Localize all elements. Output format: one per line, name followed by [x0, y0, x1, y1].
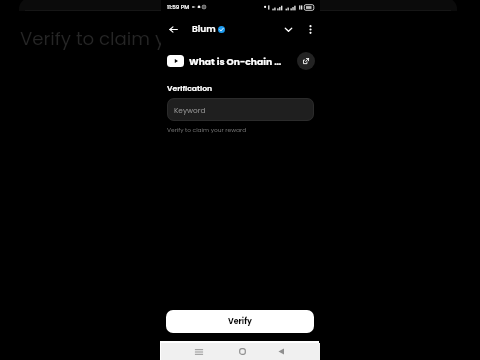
button[interactable]: Home: [233, 343, 251, 360]
staticText: Keyword: [174, 105, 206, 115]
staticText: Verification: [167, 83, 213, 94]
button[interactable]: Keyword: [167, 98, 314, 121]
staticText: Verify to claim your reward: [20, 26, 265, 51]
button[interactable]: Recent apps: [190, 343, 208, 360]
button[interactable]: Back: [163, 19, 183, 39]
button[interactable]: Open link: [297, 52, 315, 70]
staticText: 11:59 PM: [167, 3, 190, 11]
button[interactable]: More options: [300, 19, 320, 39]
button[interactable]: Verify: [166, 310, 314, 333]
button[interactable]: Back: [272, 343, 290, 360]
staticText: What is On-chain …: [189, 55, 282, 68]
button[interactable]: Expand: [278, 19, 298, 39]
staticText: Verify: [228, 316, 252, 327]
staticText: Verify to claim your reward: [167, 126, 247, 134]
staticText: Blum: [192, 23, 216, 36]
